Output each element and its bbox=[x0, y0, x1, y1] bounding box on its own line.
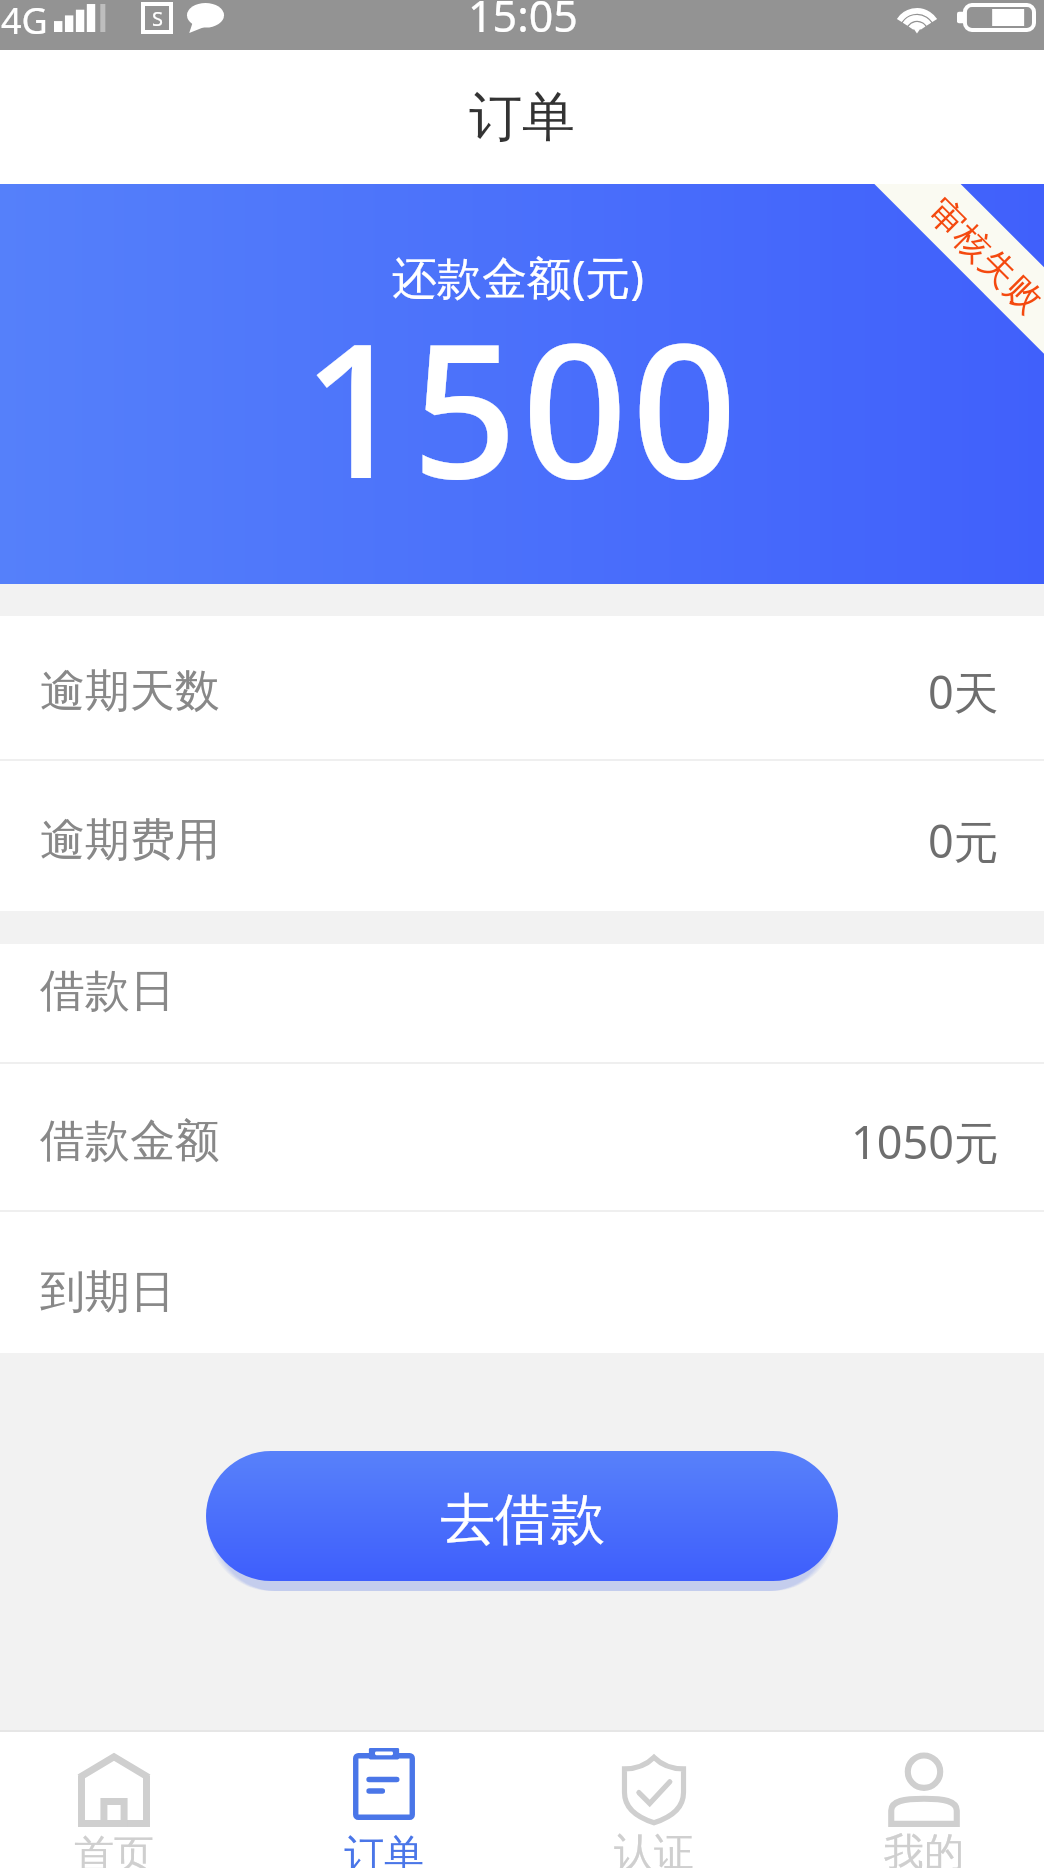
button[interactable]: 到期日 bbox=[0, 1212, 1044, 1353]
button[interactable]: 借款金额 bbox=[0, 1064, 1044, 1210]
staticText: 订单 bbox=[344, 1829, 424, 1868]
staticText: 逾期天数 bbox=[40, 663, 220, 720]
staticText: 认证 bbox=[614, 1827, 694, 1868]
staticText: 逾期费用 bbox=[40, 812, 220, 869]
staticText: 0元 bbox=[928, 810, 999, 871]
button[interactable]: 逾期费用 bbox=[0, 761, 1044, 911]
button[interactable]: 首页 bbox=[0, 1732, 234, 1868]
button[interactable]: 我的 bbox=[804, 1732, 1044, 1868]
staticText: 0天 bbox=[928, 661, 999, 722]
staticText: 1500 bbox=[302, 280, 742, 532]
button[interactable]: 去借款 bbox=[206, 1451, 838, 1581]
staticText: 借款金额 bbox=[40, 1113, 220, 1170]
staticText: 审核失败 bbox=[919, 189, 1044, 322]
staticText: S bbox=[152, 5, 163, 32]
button[interactable]: 逾期天数 bbox=[0, 616, 1044, 759]
staticText: 去借款 bbox=[440, 1485, 605, 1554]
button[interactable]: 借款日 bbox=[0, 944, 1044, 1062]
button[interactable]: 认证 bbox=[534, 1732, 774, 1868]
staticText: 15:05 bbox=[468, 0, 578, 36]
staticText: 到期日 bbox=[40, 1264, 175, 1321]
staticText: 1050元 bbox=[851, 1111, 999, 1172]
button[interactable]: 订单 bbox=[264, 1732, 504, 1868]
staticText: 我的 bbox=[884, 1827, 964, 1868]
staticText: 首页 bbox=[74, 1829, 154, 1868]
staticText: 借款日 bbox=[40, 963, 175, 1020]
staticText: 4G bbox=[1, 0, 48, 45]
staticText: 订单 bbox=[469, 84, 575, 151]
staticText: 还款金额(元) bbox=[392, 246, 645, 307]
